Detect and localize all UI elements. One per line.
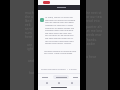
staticText: here [25, 34, 33, 38]
button[interactable]: Nav 1 [55, 80, 63, 86]
staticText: needs more detail. Thanks. [45, 42, 72, 45]
staticText: I wanted to send you a short [45, 24, 74, 27]
staticText: eek. [25, 22, 32, 26]
button[interactable]: Reply [40, 74, 49, 80]
staticText: Let me know if anything here [45, 40, 74, 43]
staticText: much [25, 10, 34, 14]
staticText: for our team as we head into [45, 34, 74, 37]
staticText: quarter ah [85, 24, 102, 28]
staticText: Hi there, thanks so much for [45, 16, 73, 19]
staticText: that we talked over last week. [45, 21, 75, 24]
button[interactable]: Reply all [53, 75, 69, 79]
staticText: summary of where things are [45, 27, 74, 30]
staticText: standing right now and what [45, 29, 74, 32]
staticText: the next st [85, 10, 102, 14]
staticText: you soon. Have a great week. [44, 52, 73, 55]
staticText: the next steps will look like [45, 32, 72, 35]
staticText: Thanks. [85, 37, 97, 41]
staticText: head into [85, 18, 100, 22]
button[interactable]: Forward [72, 74, 79, 80]
button[interactable]: App logo [43, 1, 50, 4]
staticText: send [25, 26, 33, 30]
staticText: needs mor [85, 32, 102, 36]
button[interactable]: Nav 0 [43, 80, 51, 86]
button[interactable]: Nav 2 [68, 80, 76, 86]
staticText: Let me kno [85, 28, 103, 32]
staticText: lked [25, 18, 32, 22]
staticText: to hear [85, 54, 97, 58]
staticText: the new quarter ahead of us. [45, 37, 74, 40]
staticText: and [28, 58, 34, 62]
staticText: reaching out about the update [45, 19, 76, 22]
staticText: the u [25, 14, 33, 18]
staticText: for our tea [85, 14, 102, 18]
staticText: hat [29, 70, 35, 74]
staticText: Show trimmed content • 2 more [41, 68, 77, 71]
staticText: Lookin [85, 41, 96, 45]
staticText: sum [25, 30, 32, 34]
staticText: Looking forward to hearing from [44, 50, 77, 53]
staticText: ight [27, 46, 34, 50]
staticText: are [27, 42, 33, 46]
